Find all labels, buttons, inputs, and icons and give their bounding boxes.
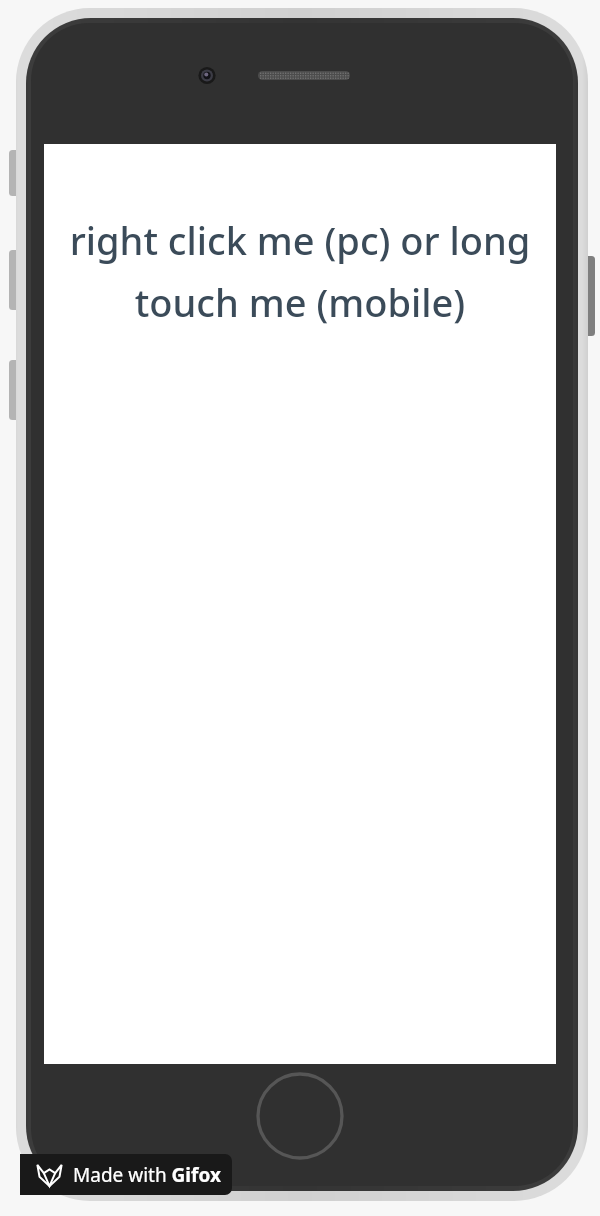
staticText: Made with Gifox (73, 1162, 221, 1188)
staticText: right click me (pc) or long touch me (mo… (48, 214, 552, 328)
button[interactable]: right click me (pc) or long touch me (mo… (44, 144, 556, 1064)
other: Made with Gifox (20, 1154, 232, 1195)
